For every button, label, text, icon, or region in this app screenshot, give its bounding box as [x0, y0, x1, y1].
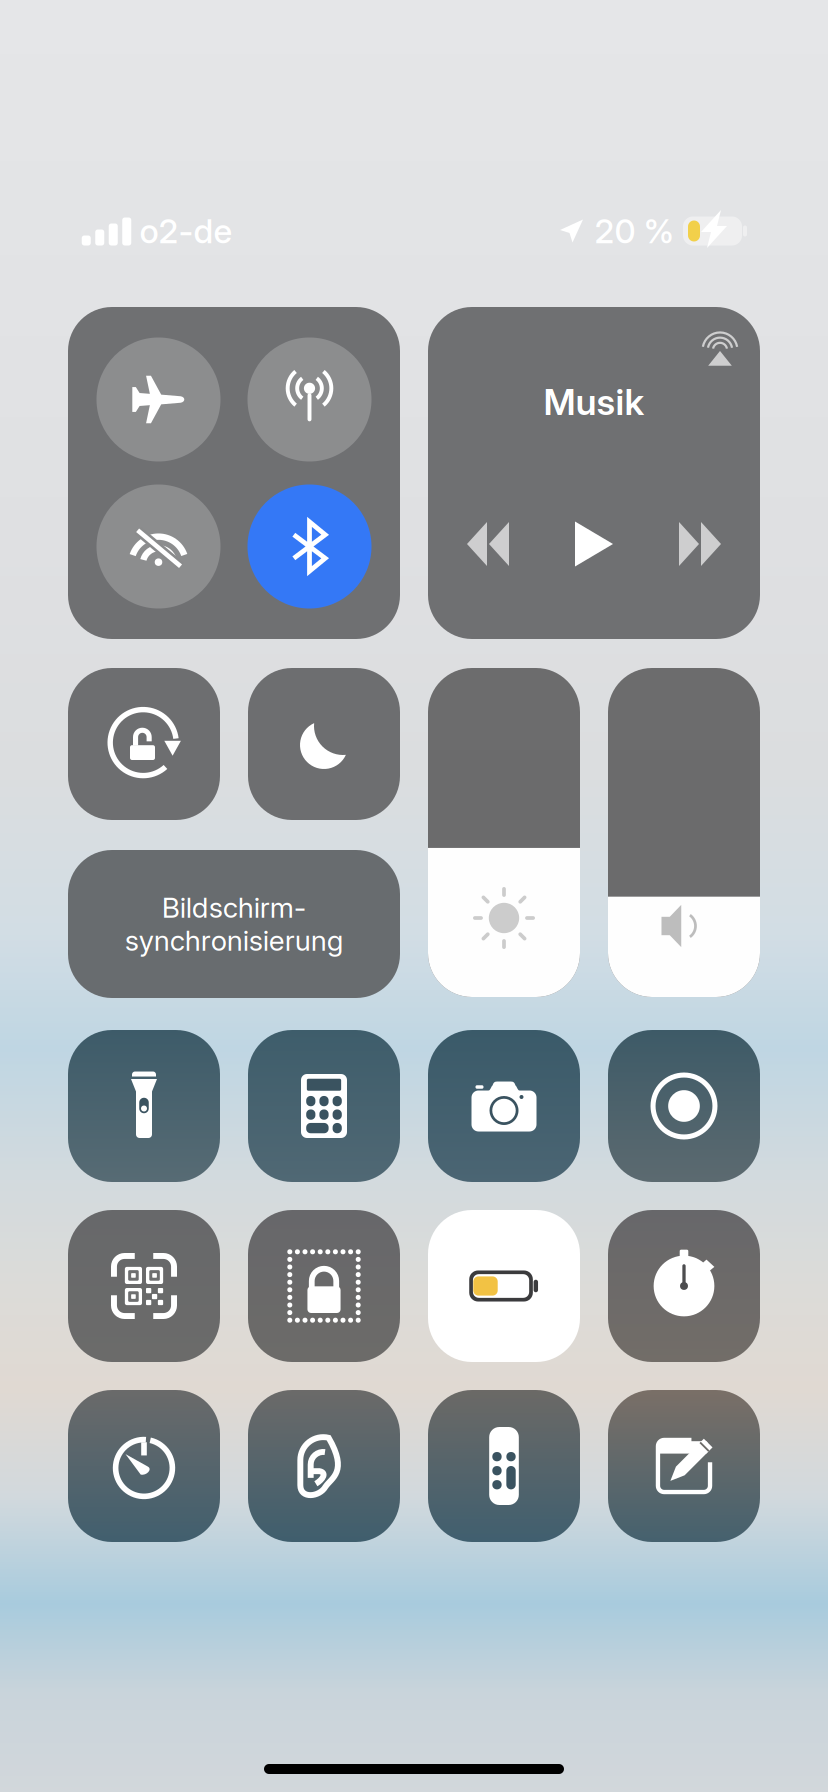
button[interactable]: Lautstärke [608, 668, 760, 997]
button[interactable]: Zurück [446, 508, 530, 580]
button[interactable]: Notizen [608, 1390, 760, 1542]
staticText: Bildschirm- synchronisierung [124, 891, 343, 957]
button[interactable]: Ausrichtungssperre [68, 668, 220, 820]
button[interactable]: Apple TV Remote [428, 1390, 580, 1542]
button[interactable]: Geführter Zugriff [248, 1210, 400, 1362]
button[interactable]: Bluetooth [247, 484, 371, 608]
staticText: 20 % [594, 211, 674, 251]
button[interactable]: Kamera [428, 1030, 580, 1182]
button[interactable]: Stromsparmodus [428, 1210, 580, 1362]
button[interactable]: Flugmodus [96, 337, 220, 461]
button[interactable]: Helligkeit [428, 668, 580, 997]
button[interactable]: AirPlay [697, 325, 743, 371]
button[interactable]: Rechner [248, 1030, 400, 1182]
button[interactable]: Taschenlampe [68, 1030, 220, 1182]
staticText: Musik [543, 381, 644, 423]
button[interactable]: Stoppuhr [68, 1390, 220, 1542]
button[interactable]: Code-Scanner [68, 1210, 220, 1362]
button[interactable]: Hören [248, 1390, 400, 1542]
staticText: o2-de [139, 211, 232, 251]
button[interactable]: WLAN [96, 484, 220, 608]
button[interactable]: Bildschirm- synchronisierung [68, 850, 400, 998]
button[interactable]: Bildschirmaufnahme [608, 1030, 760, 1182]
button[interactable]: Wiedergabe [552, 508, 636, 580]
button[interactable]: Weiter [658, 508, 742, 580]
button[interactable]: Mobile Daten [247, 337, 371, 461]
button[interactable]: Nicht stören [248, 668, 400, 820]
button[interactable]: Timer [608, 1210, 760, 1362]
